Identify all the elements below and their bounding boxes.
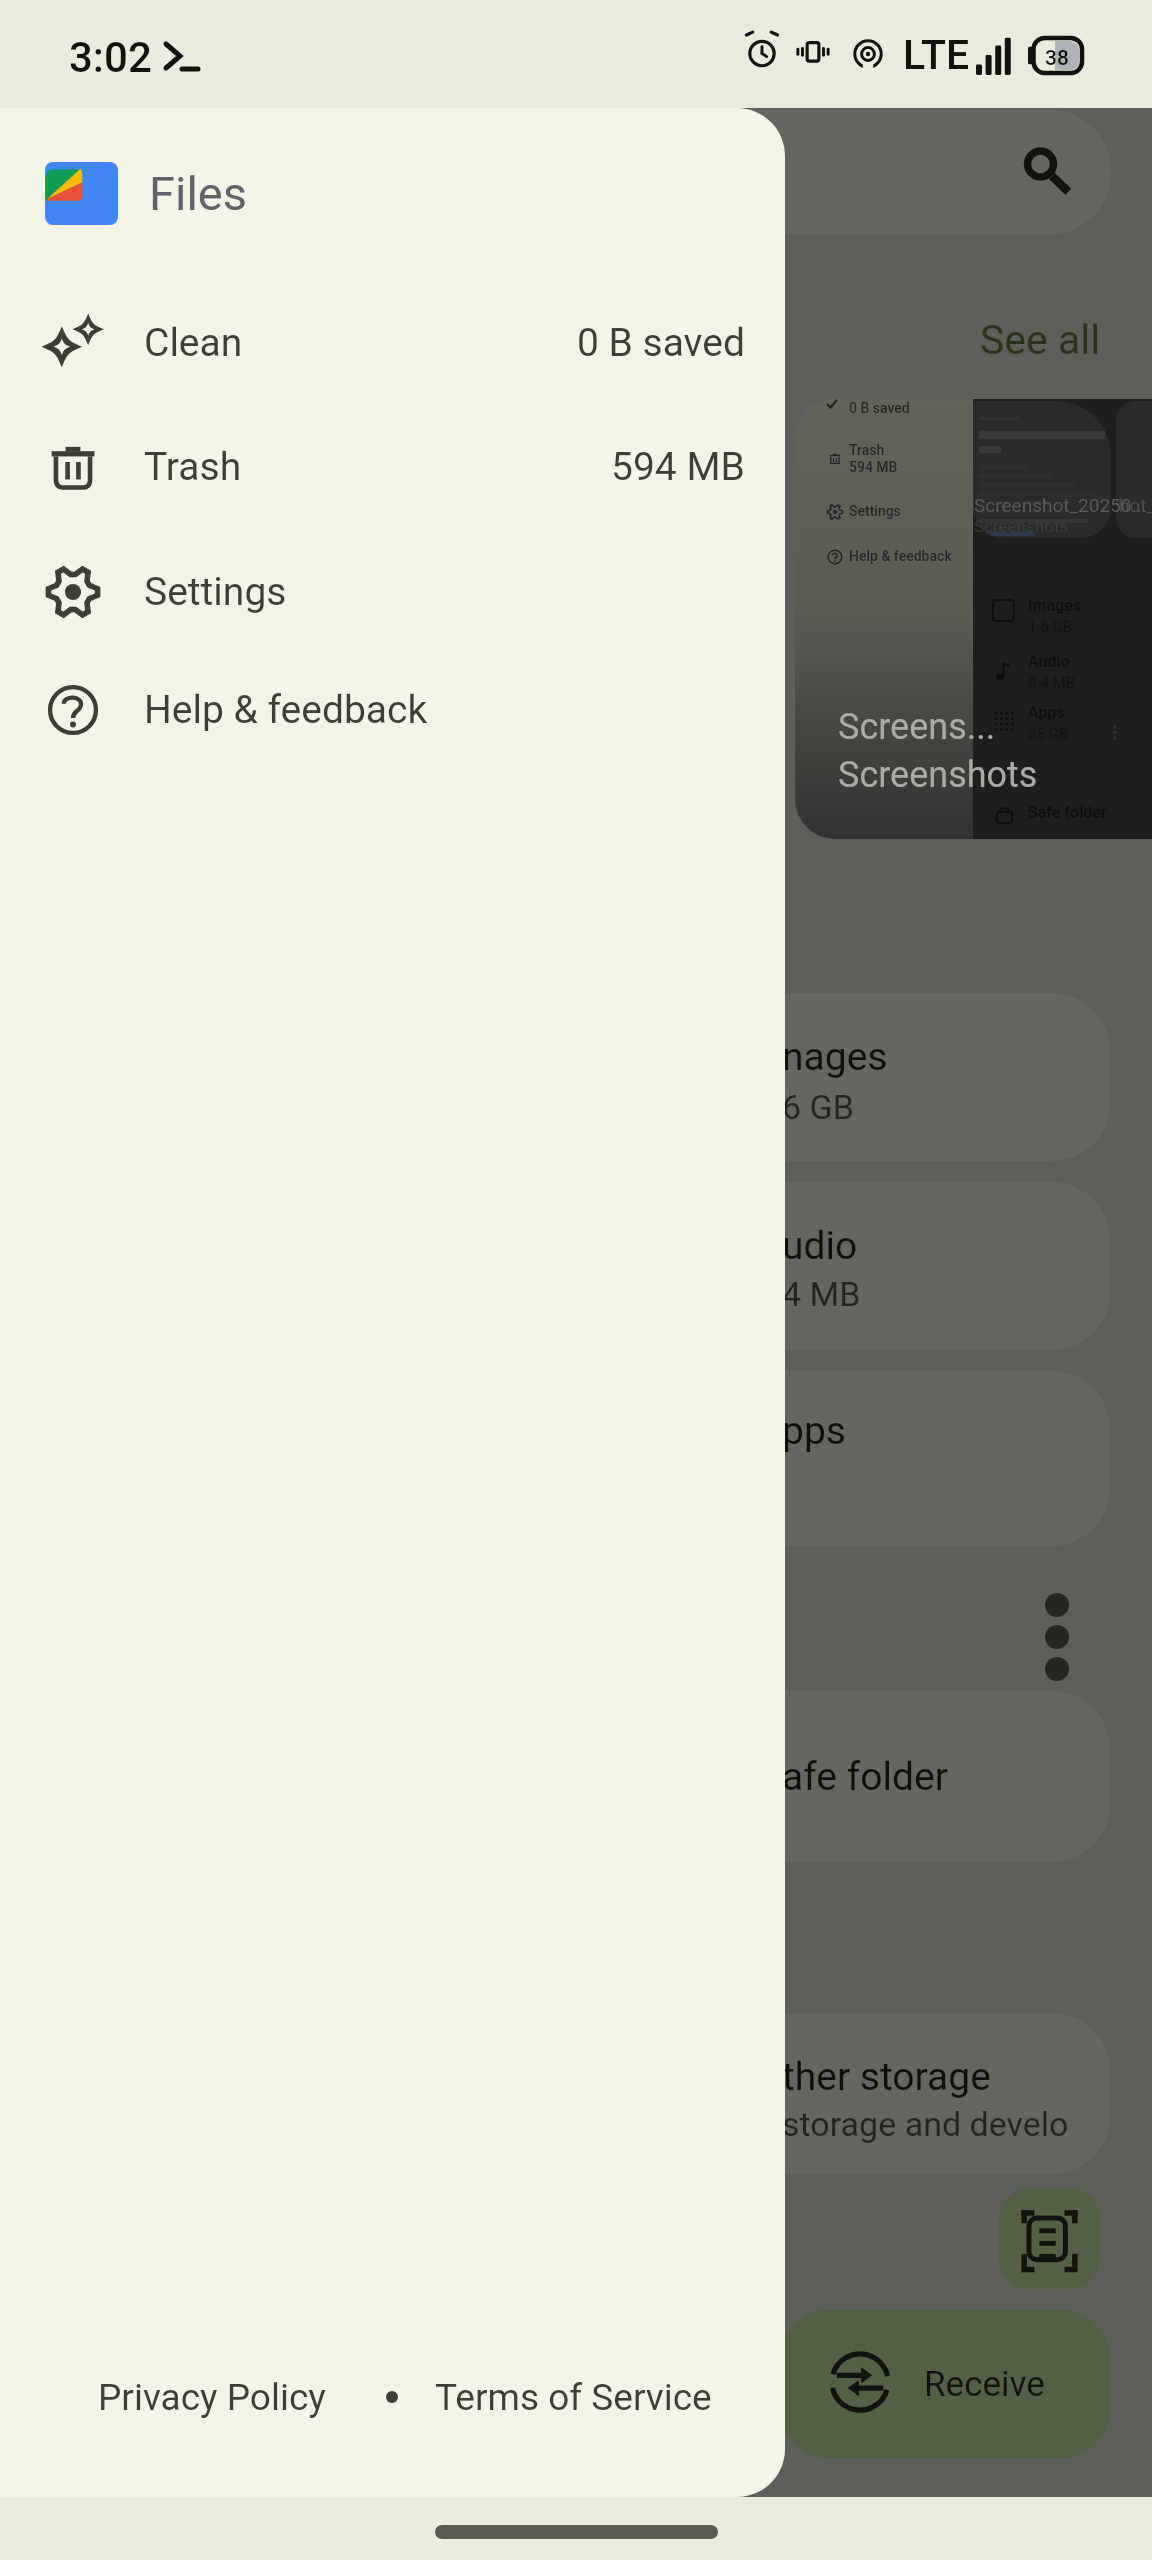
button[interactable]: afe folder [0,1691,1110,1862]
staticText: 0 B saved [849,400,910,416]
staticText: Trash [144,444,242,490]
staticText: Settings [849,503,901,519]
staticText: 1.6 GB [1028,618,1073,636]
button[interactable]: Terms of Service [435,2376,712,2419]
button[interactable]: Scan document [999,2188,1100,2289]
button[interactable]: Trash [0,405,785,529]
staticText: Settings [144,569,287,615]
staticText: Files [149,166,248,221]
staticText: Images [1028,596,1082,615]
staticText: 38 [1045,46,1069,71]
staticText: Screenshots [838,754,1038,796]
staticText: Audio [1028,652,1070,671]
staticText: nages [782,1034,888,1080]
button[interactable]: Clean [0,281,785,405]
button[interactable]: pps [0,1371,1110,1546]
staticText: 8.4 MB [1028,674,1075,692]
staticText: Trash [849,442,885,458]
staticText: 0 B saved [577,320,745,366]
staticText: Safe folder [1028,803,1107,822]
staticText: pps [782,1408,846,1454]
staticText: Receive [924,2364,1045,2405]
staticText: Privacy Policy [98,2376,326,2419]
button[interactable]: udio [0,1182,1110,1350]
button[interactable]: Settings [0,530,785,654]
staticText: Help & feedback [144,687,428,733]
button[interactable]: Files [0,131,785,255]
staticText: Screens... [838,706,996,748]
staticText: ther storage [782,2054,991,2100]
staticText: hot_2 [1119,494,1152,516]
staticText: Terms of Service [435,2376,712,2419]
staticText: 35 GB [1028,725,1069,743]
button[interactable]: nages [0,993,1110,1161]
button[interactable]: See all [980,316,1101,364]
button[interactable]: Receive [780,2310,1110,2458]
staticText: Screenshots [974,516,1069,536]
button[interactable]: Search [24,109,1111,235]
staticText: Clean [144,320,243,366]
button[interactable]: Privacy Policy [98,2376,326,2419]
button[interactable]: ther storage [0,2013,1110,2174]
staticText: storage and develo [782,2104,1069,2144]
staticText: 594 MB [611,444,745,490]
staticText: Help & feedback [849,548,952,564]
staticText: 594 MB [849,459,898,475]
button[interactable] [795,399,975,839]
staticText: Screenshot_20250... [974,494,1147,516]
button[interactable]: Help & feedback [0,648,785,772]
staticText: 3:02 [69,33,152,82]
staticText: udio [782,1223,858,1269]
staticText: afe folder [782,1754,948,1800]
staticText: See all [980,316,1101,364]
staticText: LTE [903,31,970,79]
staticText: 6 GB [782,1087,854,1127]
staticText: 4 MB [782,1274,861,1314]
staticText: Apps [1028,703,1065,722]
